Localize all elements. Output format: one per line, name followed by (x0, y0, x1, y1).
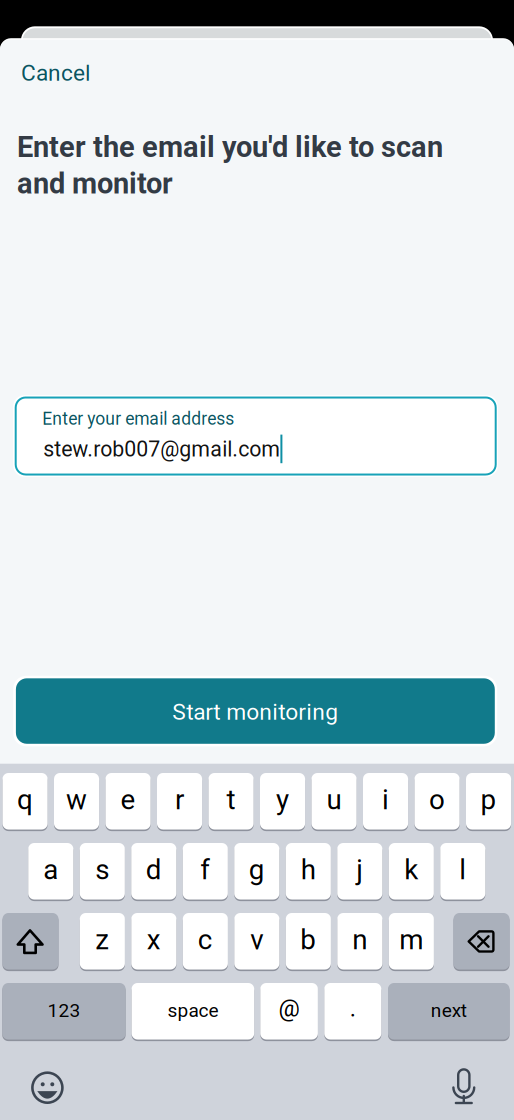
staticText: v (250, 923, 263, 956)
staticText: c (198, 923, 213, 956)
staticText: @ (279, 995, 300, 1022)
staticText: j (356, 853, 363, 886)
staticText: space (167, 999, 218, 1022)
staticText: d (146, 853, 162, 886)
staticText: q (17, 783, 33, 816)
staticText: y (276, 783, 289, 816)
staticText: Start monitoring (172, 698, 338, 725)
staticText: b (300, 923, 316, 956)
staticText: 123 (47, 999, 80, 1022)
button[interactable]: w (54, 773, 99, 829)
staticText: k (404, 853, 418, 886)
button[interactable]: m (389, 913, 434, 969)
staticText: i (382, 783, 389, 816)
button[interactable]: Start monitoring (16, 678, 495, 744)
button[interactable]: Cancel (16, 56, 124, 100)
staticText: n (352, 923, 367, 956)
staticText: t (227, 783, 236, 816)
staticText: next (431, 999, 467, 1022)
staticText: l (459, 853, 466, 886)
staticText: . (350, 995, 356, 1022)
button[interactable]: Emoji keyboard (23, 1064, 71, 1112)
button[interactable]: o (414, 773, 460, 829)
staticText: m (399, 923, 423, 956)
button[interactable]: space (132, 983, 254, 1039)
button[interactable]: k (389, 843, 434, 899)
button[interactable]: n (337, 913, 382, 969)
button[interactable]: . (324, 983, 381, 1039)
button[interactable]: i (363, 773, 408, 829)
button[interactable]: @ (260, 983, 318, 1039)
staticText: g (249, 853, 265, 886)
staticText: r (175, 783, 184, 816)
button[interactable]: p (466, 773, 511, 829)
staticText: x (147, 923, 161, 956)
button[interactable]: next (388, 983, 509, 1039)
staticText: f (200, 853, 210, 886)
staticText: a (43, 853, 58, 886)
button[interactable]: e (105, 773, 151, 829)
button[interactable]: c (183, 913, 228, 969)
button[interactable]: t (208, 773, 254, 829)
button[interactable]: j (337, 843, 382, 899)
staticText: Cancel (21, 60, 91, 86)
staticText: z (95, 923, 109, 956)
button[interactable]: f (183, 843, 228, 899)
staticText: s (95, 853, 109, 886)
button[interactable]: Delete (453, 913, 509, 969)
button[interactable]: z (80, 913, 125, 969)
staticText: Enter the email you'd like to scan (17, 130, 443, 164)
button[interactable]: x (131, 913, 176, 969)
staticText: p (481, 783, 497, 816)
button[interactable]: Dictation (440, 1062, 488, 1110)
staticText: u (327, 783, 342, 816)
staticText: e (120, 783, 135, 816)
staticText: o (429, 783, 445, 816)
staticText: Enter your email address (42, 409, 234, 429)
button[interactable]: g (234, 843, 279, 899)
staticText: w (66, 783, 87, 816)
button[interactable]: Shift (2, 913, 58, 969)
button[interactable]: b (286, 913, 331, 969)
staticText: h (301, 853, 316, 886)
button[interactable]: u (311, 773, 357, 829)
button[interactable]: 123 (2, 983, 126, 1039)
button[interactable]: s (80, 843, 125, 899)
button[interactable]: l (440, 843, 485, 899)
button[interactable]: d (131, 843, 176, 899)
staticText: stew.rob007@gmail.com (43, 437, 280, 462)
button[interactable]: y (260, 773, 305, 829)
staticText: and monitor (17, 167, 173, 201)
button[interactable]: r (157, 773, 202, 829)
button[interactable]: q (2, 773, 48, 829)
button[interactable]: h (286, 843, 331, 899)
button[interactable]: a (28, 843, 73, 899)
button[interactable]: v (234, 913, 279, 969)
